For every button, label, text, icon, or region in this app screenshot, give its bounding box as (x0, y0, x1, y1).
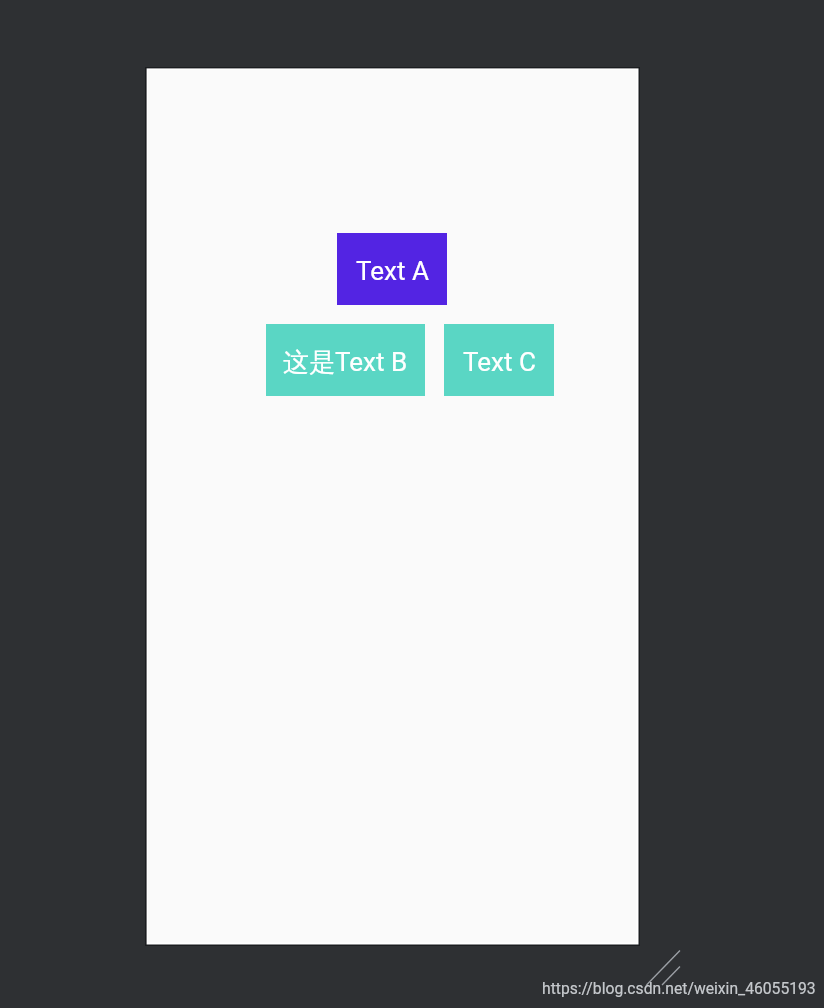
staticText: 这是Text B (283, 346, 408, 379)
staticText: https://blog.csdn.net/weixin_46055193 (542, 979, 816, 997)
button[interactable]: 这是Text B (266, 324, 425, 396)
staticText: Text C (463, 347, 536, 377)
button[interactable]: Text A (337, 233, 447, 305)
button[interactable]: Text C (444, 324, 554, 396)
other: Watermark (0, 0, 824, 1008)
staticText: Text A (356, 256, 429, 286)
